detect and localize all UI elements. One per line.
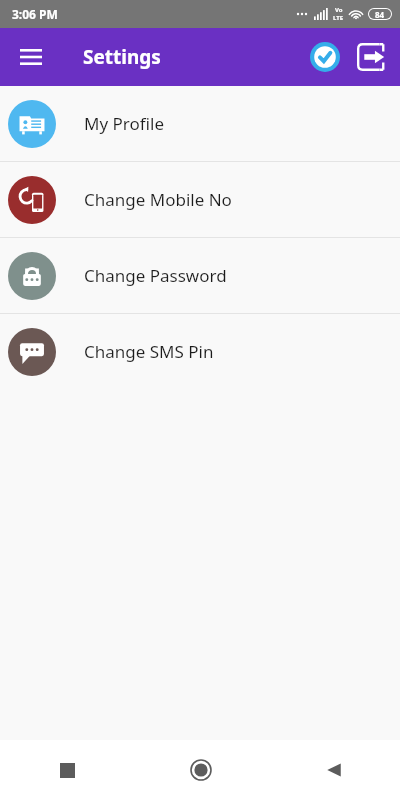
staticText: My Profile [84,112,164,135]
button[interactable]: Confirm [302,34,348,80]
staticText: Change Password [84,264,227,287]
button[interactable]: Change SMS Pin [0,314,400,389]
staticText: 84 [375,9,385,19]
staticText: Change SMS Pin [84,340,214,363]
button[interactable]: Home [134,740,267,800]
staticText: Change Mobile No [84,188,232,211]
button[interactable]: Recent apps [0,740,134,800]
staticText: LTE [333,14,344,22]
staticText: Settings [83,44,161,70]
button[interactable]: Change Mobile No [0,162,400,237]
button[interactable]: Change Password [0,238,400,313]
staticText: Vo [335,6,343,14]
button[interactable]: Open navigation menu [10,36,52,78]
button[interactable]: Logout [348,34,394,80]
staticText: 3:06 PM [12,6,58,22]
button[interactable]: Back [267,740,400,800]
button[interactable]: My Profile [0,86,400,161]
